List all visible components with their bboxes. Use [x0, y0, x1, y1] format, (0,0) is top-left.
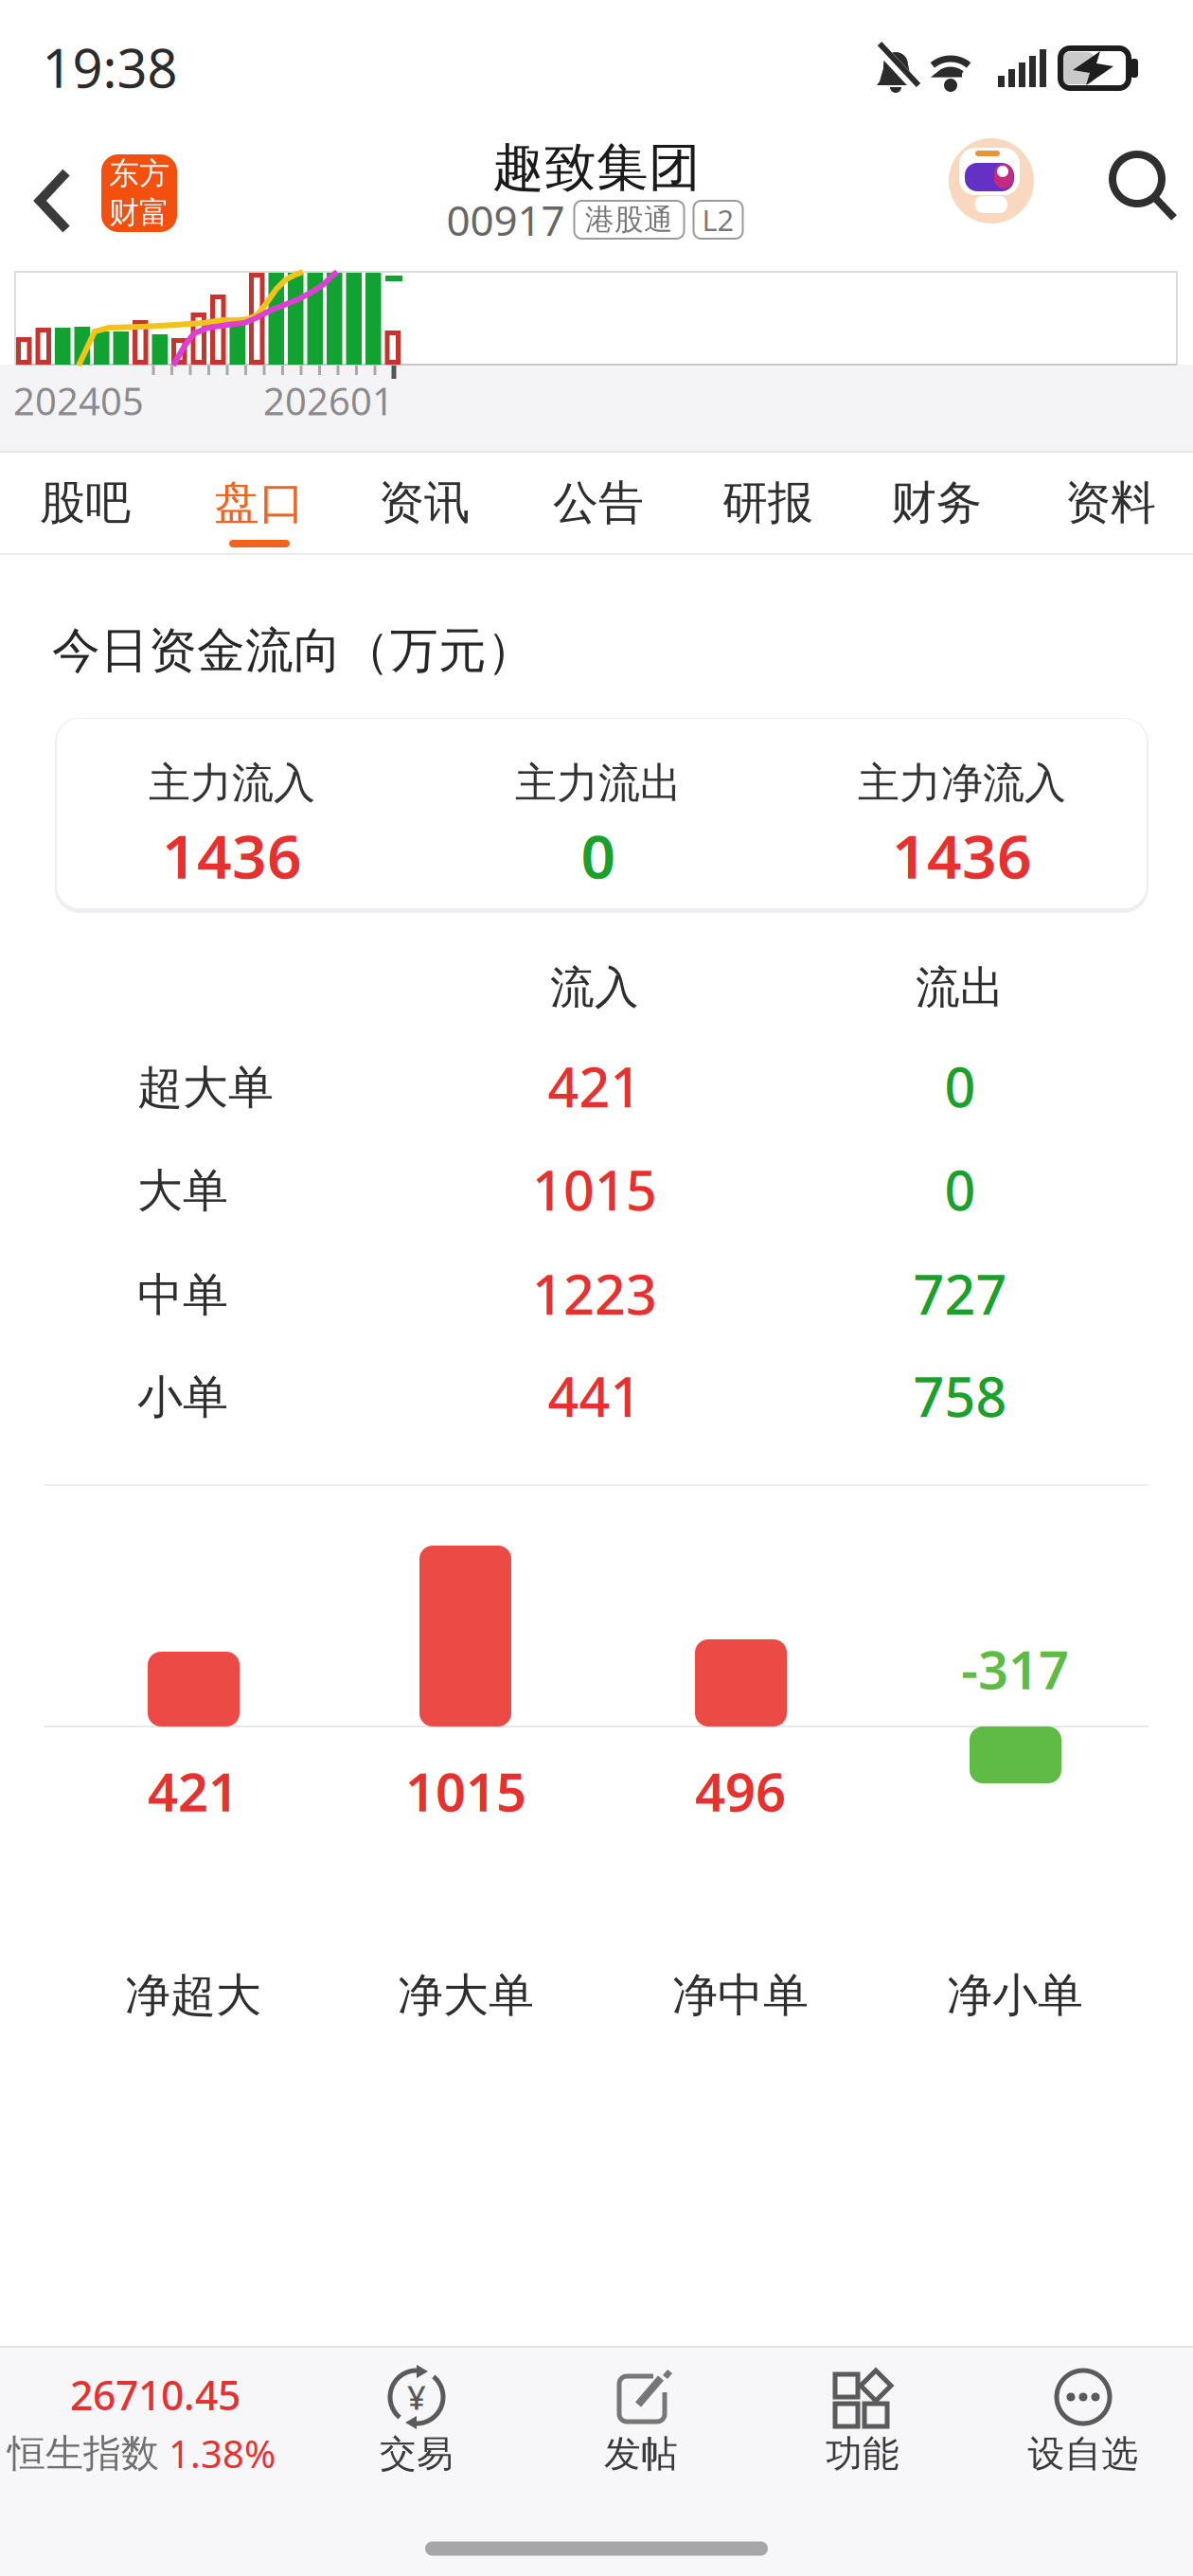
- staticText: 净大单: [398, 1968, 534, 2023]
- staticText: 496: [695, 1756, 786, 1826]
- button[interactable]: 东方: [101, 154, 177, 232]
- staticText: 727: [913, 1258, 1007, 1330]
- button[interactable]: 资料: [1035, 456, 1186, 550]
- staticText: 超大单: [137, 1060, 274, 1116]
- staticText: 发帖: [604, 2431, 678, 2476]
- staticText: 1436: [892, 815, 1032, 895]
- staticText: 00917: [446, 192, 565, 247]
- staticText: 流出: [916, 961, 1005, 1015]
- button[interactable]: [25, 165, 81, 237]
- staticText: 主力流入: [149, 758, 315, 809]
- button[interactable]: 研报: [692, 456, 844, 550]
- staticText: 中单: [137, 1267, 228, 1323]
- staticText: 净中单: [672, 1968, 809, 2023]
- staticText: 功能: [826, 2431, 899, 2476]
- staticText: 0: [581, 815, 616, 895]
- staticText: L2: [702, 200, 734, 239]
- staticText: 东方: [109, 155, 169, 192]
- staticText: 441: [548, 1360, 641, 1432]
- button[interactable]: 资讯: [348, 456, 500, 550]
- button[interactable]: [949, 138, 1034, 224]
- button[interactable]: 财务: [861, 456, 1012, 550]
- staticText: 主力流出: [515, 758, 682, 809]
- staticText: 758: [913, 1360, 1007, 1432]
- button[interactable]: 设自选: [1007, 2365, 1159, 2482]
- staticText: 净小单: [947, 1968, 1083, 2023]
- staticText: 净超大: [125, 1968, 261, 2023]
- staticText: 1436: [162, 815, 302, 895]
- staticText: 财务: [891, 475, 982, 531]
- staticText: 0: [944, 1153, 976, 1225]
- staticText: 1.38%: [169, 2428, 276, 2479]
- staticText: 财富: [109, 194, 169, 231]
- staticText: 今日资金流向（万元）: [52, 621, 535, 680]
- staticText: 1223: [532, 1258, 657, 1330]
- staticText: 26710.45: [70, 2368, 240, 2421]
- button[interactable]: 功能: [787, 2365, 938, 2482]
- staticText: ¥: [407, 2375, 426, 2419]
- staticText: 小单: [137, 1369, 228, 1425]
- staticText: 1015: [405, 1756, 526, 1826]
- button[interactable]: 股吧: [9, 456, 161, 550]
- staticText: 交易: [380, 2431, 454, 2476]
- staticText: 202601: [263, 375, 394, 426]
- staticText: 恒生指数: [8, 2430, 159, 2477]
- staticText: -317: [961, 1633, 1069, 1704]
- staticText: 0: [944, 1050, 976, 1122]
- staticText: 设自选: [1028, 2431, 1139, 2476]
- button[interactable]: 发帖: [565, 2365, 717, 2482]
- staticText: 趣致集团: [492, 136, 701, 199]
- staticText: 港股通: [585, 202, 673, 238]
- button[interactable]: [1107, 151, 1179, 223]
- staticText: 资料: [1065, 475, 1156, 531]
- staticText: 股吧: [40, 475, 131, 531]
- button[interactable]: 26710.45: [8, 2366, 282, 2487]
- staticText: 1015: [532, 1153, 657, 1225]
- staticText: 研报: [722, 475, 813, 531]
- staticText: 202405: [13, 375, 144, 426]
- staticText: 公告: [553, 475, 644, 531]
- staticText: 流入: [550, 961, 639, 1015]
- button[interactable]: 盘口: [184, 456, 335, 550]
- staticText: 资讯: [379, 475, 470, 531]
- staticText: 19:38: [42, 32, 178, 102]
- button[interactable]: 公告: [523, 456, 674, 550]
- staticText: 421: [148, 1756, 239, 1826]
- staticText: 421: [548, 1050, 641, 1122]
- staticText: 主力净流入: [858, 758, 1066, 809]
- staticText: 盘口: [214, 475, 305, 531]
- button[interactable]: ¥: [341, 2365, 492, 2482]
- staticText: 大单: [137, 1163, 228, 1219]
